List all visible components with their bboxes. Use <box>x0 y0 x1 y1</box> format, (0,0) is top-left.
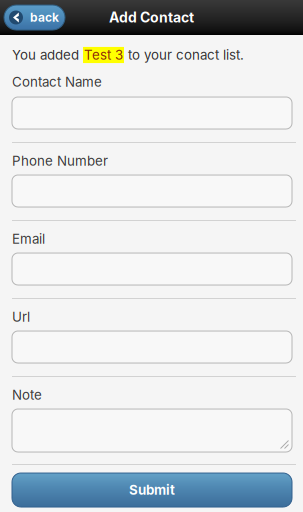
staticText: Phone Number <box>12 153 108 169</box>
staticText: Test 3 <box>84 47 123 63</box>
staticText: You added <box>12 47 83 63</box>
staticText: Note <box>12 387 42 403</box>
staticText: to your conact list. <box>124 47 244 63</box>
staticText: Email <box>12 231 45 247</box>
button[interactable]: back <box>4 5 65 30</box>
staticText: Contact Name <box>12 74 102 90</box>
staticText: Submit <box>129 482 175 498</box>
staticText: back <box>30 10 59 25</box>
button[interactable]: Submit <box>12 473 292 507</box>
staticText: Add Contact <box>109 9 194 26</box>
staticText: Url <box>12 309 30 325</box>
